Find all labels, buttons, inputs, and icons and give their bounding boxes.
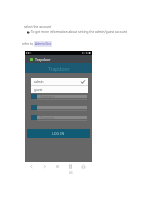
- staticText: 63: [69, 171, 73, 175]
- button[interactable]: admin: [31, 78, 88, 85]
- staticText: guest: [34, 88, 43, 92]
- button[interactable]: Bookmarks: [64, 162, 77, 170]
- staticText: Admin/Gst: [35, 42, 51, 46]
- button[interactable]: Username: [25, 94, 92, 100]
- staticText: LOG IN: [52, 131, 65, 136]
- button[interactable]: Menu: [51, 162, 64, 170]
- button[interactable]: Home: [77, 162, 90, 170]
- button[interactable]: LOG IN: [27, 129, 90, 138]
- staticText: Trapdoor: [35, 57, 51, 62]
- button[interactable]: Admin/Gst: [34, 41, 52, 47]
- button[interactable]: [25, 105, 92, 111]
- staticText: refer to: [22, 42, 34, 46]
- button[interactable]: guest: [31, 86, 88, 93]
- button[interactable]: Forward: [38, 162, 51, 170]
- staticText: Trapdoor: [48, 65, 70, 72]
- staticText: To get more information about setting th…: [31, 30, 127, 34]
- staticText: Username: [40, 95, 55, 98]
- staticText: Password: [40, 116, 54, 119]
- button[interactable]: Password: [25, 115, 92, 121]
- staticText: admin: [34, 80, 44, 84]
- staticText: select the account: [24, 25, 52, 29]
- button[interactable]: Back: [24, 162, 38, 170]
